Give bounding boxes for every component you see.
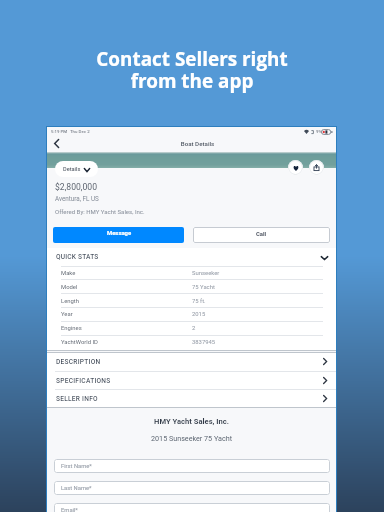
- staticText: 2: [192, 325, 196, 332]
- staticText: SPECIFICATIONS: [56, 377, 111, 385]
- staticText: Last Name*: [61, 485, 92, 492]
- staticText: 2015: [192, 311, 206, 318]
- button[interactable]: Favorite: [288, 160, 303, 175]
- button[interactable]: Details: [55, 161, 98, 177]
- button[interactable]: Share: [309, 160, 324, 175]
- staticText: Email*: [61, 507, 78, 512]
- staticText: Call: [256, 231, 267, 238]
- staticText: DESCRIPTION: [56, 358, 101, 366]
- staticText: Year: [61, 311, 73, 318]
- button[interactable]: Last Name*: [54, 481, 330, 495]
- button[interactable]: SELLER INFO: [47, 389, 336, 408]
- staticText: Thu Dec 2: [70, 129, 90, 134]
- staticText: Offered By: HMY Yacht Sales, Inc.: [55, 208, 145, 215]
- staticText: Make: [61, 270, 76, 277]
- staticText: SELLER INFO: [56, 395, 98, 403]
- button[interactable]: SPECIFICATIONS: [47, 371, 336, 390]
- staticText: 9%: [316, 129, 322, 134]
- button[interactable]: Call: [193, 227, 330, 243]
- button[interactable]: Collapse quick stats: [317, 252, 332, 263]
- staticText: Contact Sellers right from the app: [0, 46, 384, 93]
- staticText: Length: [61, 298, 80, 305]
- staticText: Sunseeker: [192, 270, 220, 277]
- staticText: 2015 Sunseeker 75 Yacht: [47, 434, 336, 442]
- button[interactable]: Email*: [54, 503, 330, 512]
- staticText: Engines: [61, 325, 82, 332]
- staticText: First Name*: [61, 463, 92, 470]
- button[interactable]: First Name*: [54, 459, 330, 473]
- staticText: 3837945: [192, 339, 216, 346]
- button[interactable]: Message: [53, 227, 184, 243]
- staticText: QUICK STATS: [56, 253, 99, 261]
- staticText: $2,800,000: [55, 182, 98, 192]
- button[interactable]: Back: [48, 136, 64, 150]
- button[interactable]: DESCRIPTION: [47, 352, 336, 371]
- staticText: 75 Yacht: [192, 284, 215, 291]
- staticText: Message: [107, 230, 132, 237]
- staticText: Model: [61, 284, 78, 291]
- staticText: Boat Details: [53, 140, 342, 147]
- staticText: Aventura, FL US: [55, 195, 99, 202]
- staticText: HMY Yacht Sales, Inc.: [47, 417, 336, 426]
- staticText: YachtWorld ID: [61, 339, 98, 346]
- staticText: 5:19 PM: [51, 129, 68, 134]
- staticText: 75 ft.: [192, 298, 206, 305]
- staticText: Details: [63, 166, 81, 173]
